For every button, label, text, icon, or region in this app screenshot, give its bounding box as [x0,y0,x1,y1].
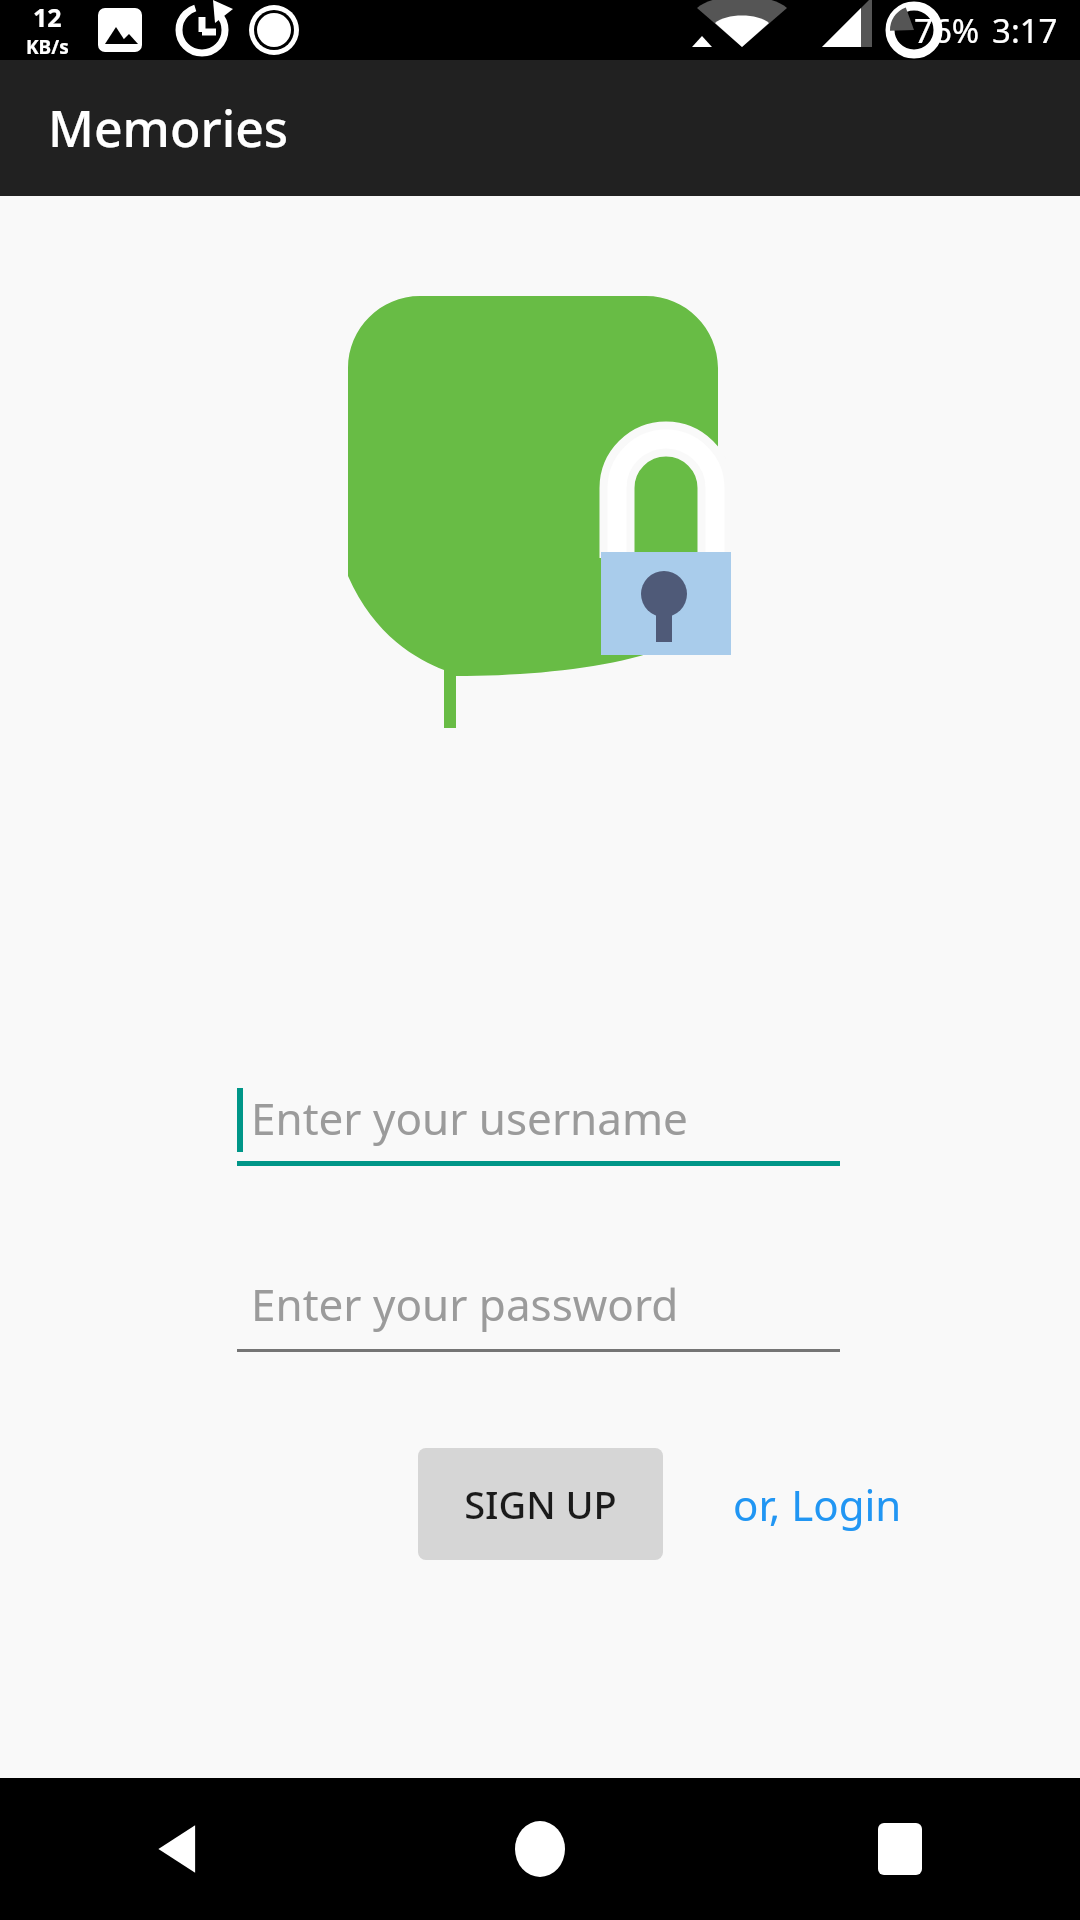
staticText: or, Login [733,1476,902,1533]
button[interactable]: Recent apps [720,1778,1080,1920]
button[interactable]: Enter your username [237,1076,840,1166]
staticText: 76% [914,8,980,53]
staticText: Enter your username [251,1088,688,1148]
staticText: Memories [48,94,289,162]
button[interactable]: Back [0,1778,360,1920]
button[interactable]: Enter your password [237,1262,840,1352]
staticText: 12 [33,0,62,34]
staticText: SIGN UP [464,1478,617,1530]
button[interactable]: or, Login [733,1476,902,1533]
staticText: Enter your password [251,1274,679,1334]
button[interactable]: SIGN UP [418,1448,663,1560]
staticText: KB/s [26,34,69,60]
staticText: 3:17 [992,8,1058,53]
button[interactable]: Home [360,1778,720,1920]
